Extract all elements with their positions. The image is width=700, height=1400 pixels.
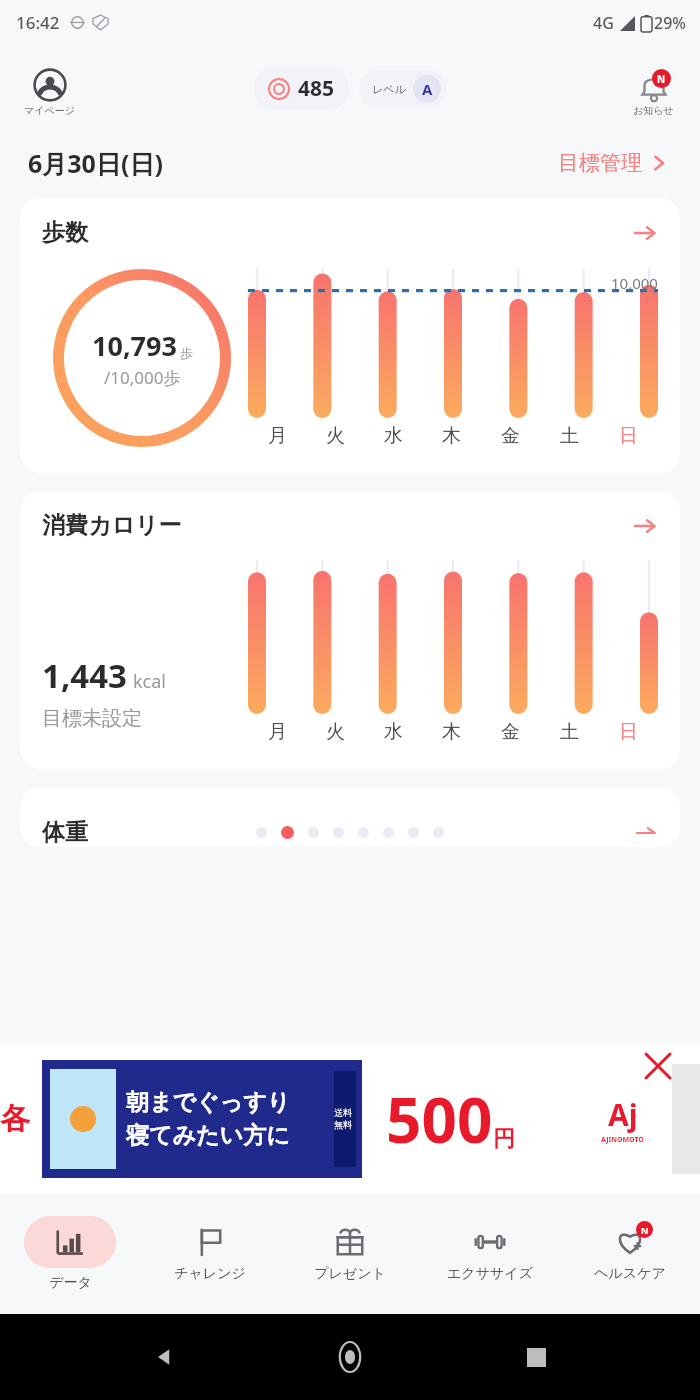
button[interactable]: 各 — [0, 1044, 700, 1194]
staticText: 歩数 — [42, 218, 88, 247]
staticText: 土 — [560, 720, 579, 744]
staticText: 日 — [619, 720, 638, 744]
button[interactable]: N — [560, 1194, 700, 1314]
staticText: 1,443 — [42, 653, 127, 698]
staticText: 体重 — [42, 818, 88, 847]
button[interactable]: マイページ — [20, 66, 79, 119]
staticText: AJINOMOTO — [601, 1135, 644, 1145]
staticText: チャレンジ — [174, 1265, 246, 1283]
staticText: 金 — [501, 720, 520, 744]
staticText: 木 — [442, 424, 461, 448]
staticText: 目標未設定 — [42, 706, 142, 731]
staticText: 消費カロリー — [42, 511, 182, 540]
staticText: 月 — [268, 424, 287, 448]
button[interactable]: お知らせ — [629, 67, 678, 119]
staticText: 485 — [298, 74, 335, 103]
staticText: 朝までぐっすり — [126, 1088, 291, 1117]
staticText: /10,000歩 — [104, 366, 181, 389]
staticText: データ — [49, 1274, 92, 1292]
button[interactable]: ホーム — [328, 1335, 372, 1379]
button[interactable]: エクササイズ — [420, 1194, 560, 1314]
staticText: A — [422, 79, 433, 99]
staticText: 目標管理 — [558, 150, 642, 176]
staticText: 木 — [442, 720, 461, 744]
staticText: エクササイズ — [447, 1265, 533, 1283]
staticText: 金 — [501, 424, 520, 448]
staticText: プレゼント — [314, 1265, 386, 1283]
staticText: 水 — [384, 424, 403, 448]
staticText: 4G — [593, 12, 614, 34]
staticText: 寝てみたい方に — [126, 1121, 290, 1150]
staticText: kcal — [133, 669, 166, 694]
button[interactable]: レベル — [359, 70, 447, 108]
staticText: 月 — [268, 720, 287, 744]
staticText: 500 — [386, 1077, 493, 1161]
button[interactable]: 消費カロリーの詳細 — [632, 513, 658, 539]
staticText: お知らせ — [633, 104, 674, 117]
staticText: 日 — [619, 424, 638, 448]
staticText: Aj — [608, 1094, 638, 1135]
button[interactable]: プレゼント — [280, 1194, 420, 1314]
staticText: ヘルスケア — [594, 1265, 666, 1283]
staticText: 土 — [560, 424, 579, 448]
staticText: マイページ — [24, 104, 75, 117]
staticText: 歩 — [180, 345, 193, 361]
staticText: 29% — [654, 12, 686, 34]
button[interactable]: 目標管理 — [554, 146, 672, 180]
staticText: レベル — [372, 82, 406, 96]
button[interactable]: 戻る — [144, 1337, 184, 1377]
button[interactable]: 最近のアプリ — [516, 1337, 556, 1377]
button[interactable]: 歩数 — [20, 198, 680, 473]
staticText: 円 — [493, 1125, 515, 1153]
staticText: 水 — [384, 720, 403, 744]
button[interactable]: 歩数の詳細 — [632, 220, 658, 246]
staticText: 10,793 — [92, 327, 177, 364]
staticText: N — [657, 72, 666, 86]
staticText: 送料無料 — [334, 1107, 356, 1131]
staticText: 火 — [326, 424, 345, 448]
staticText: 10,000 — [611, 273, 658, 293]
staticText: 6月30日(日) — [28, 146, 163, 180]
button[interactable]: 体重 — [20, 787, 680, 847]
button[interactable]: データ — [0, 1194, 140, 1314]
staticText: 各 — [0, 1100, 30, 1138]
staticText: 火 — [326, 720, 345, 744]
button[interactable]: 消費カロリー — [20, 491, 680, 769]
button[interactable]: 485 — [254, 66, 349, 111]
button[interactable]: チャレンジ — [140, 1194, 280, 1314]
staticText: 16:42 — [16, 11, 60, 34]
staticText: N — [641, 1224, 649, 1236]
